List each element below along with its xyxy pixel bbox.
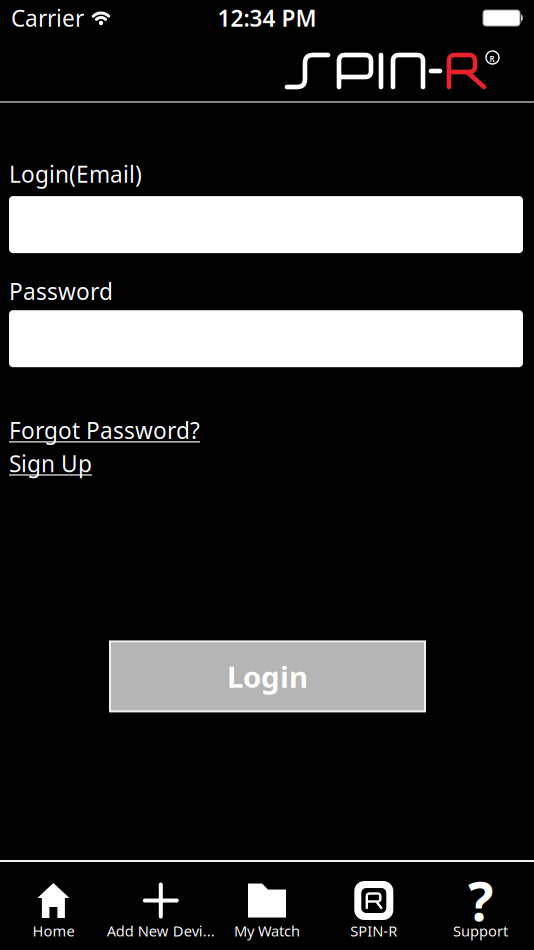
staticText: Add New Devi... xyxy=(107,921,215,940)
staticText: Support xyxy=(453,921,508,940)
staticText: 12:34 PM xyxy=(217,3,316,33)
staticText: Carrier xyxy=(11,3,84,33)
button[interactable]: Add New Devi... xyxy=(107,881,214,940)
button[interactable] xyxy=(9,196,523,253)
button[interactable]: ? xyxy=(427,881,534,940)
staticText: Home xyxy=(32,921,74,940)
staticText: My Watch xyxy=(234,921,300,940)
staticText: Sign Up xyxy=(9,448,92,478)
staticText: Password xyxy=(9,276,113,306)
button[interactable]: My Watch xyxy=(214,881,320,940)
button[interactable]: Sign Up xyxy=(9,448,92,478)
button[interactable]: Home xyxy=(0,881,107,940)
staticText: Forgot Password? xyxy=(9,415,200,445)
button[interactable]: Forgot Password? xyxy=(9,415,200,445)
button[interactable]: Login xyxy=(108,641,423,711)
staticText: Login(Email) xyxy=(9,159,142,189)
button[interactable]: SPIN-R xyxy=(320,881,427,940)
staticText: Login xyxy=(227,657,308,696)
staticText: SPIN-R xyxy=(350,921,397,940)
staticText: R xyxy=(489,53,494,64)
staticText: ? xyxy=(468,865,493,936)
button[interactable] xyxy=(9,310,523,367)
